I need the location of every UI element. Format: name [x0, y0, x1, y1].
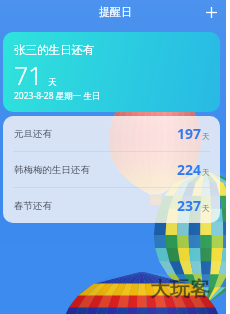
staticText: 天 — [202, 168, 210, 177]
staticText: 大玩客 — [150, 277, 210, 302]
staticText: 197 — [177, 124, 202, 143]
button[interactable]: Add reminder — [200, 1, 222, 23]
button[interactable]: 春节还有 — [3, 188, 220, 223]
staticText: 韩梅梅的生日还有 — [14, 164, 90, 176]
staticText: 提醒日 — [99, 5, 132, 19]
button[interactable]: 张三的生日还有 — [3, 32, 220, 112]
staticText: 张三的生日还有 — [14, 43, 95, 57]
staticText: 元旦还有 — [14, 128, 52, 140]
button[interactable]: 韩梅梅的生日还有 — [3, 152, 220, 187]
staticText: 天 — [202, 204, 210, 213]
staticText: 春节还有 — [14, 200, 52, 212]
staticText: 224 — [177, 160, 202, 179]
staticText: 2023-8-28 星期一 生日 — [14, 90, 101, 102]
button[interactable]: 元旦还有 — [3, 116, 220, 151]
staticText: 天 — [202, 132, 210, 141]
staticText: 237 — [177, 196, 202, 215]
staticText: 71 — [14, 58, 43, 92]
staticText: 天 — [48, 77, 57, 88]
